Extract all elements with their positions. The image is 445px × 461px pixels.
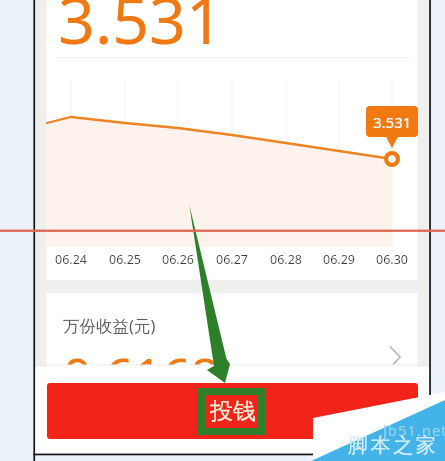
staticText: 06.26 [154,251,202,268]
staticText: 06.30 [368,251,416,268]
staticText: 3.531 [373,112,412,132]
staticText: 脚本之家 [348,433,439,458]
button[interactable]: More [383,332,409,365]
staticText: 投钱 [210,397,256,426]
staticText: 0.6168 [63,341,220,365]
button[interactable]: 投钱 [47,383,418,439]
staticText: 06.29 [315,251,363,268]
staticText: 3.531 [58,0,223,63]
staticText: jb51.net [383,420,445,440]
staticText: 06.25 [101,251,149,268]
staticText: 万份收益(元) [63,314,156,337]
staticText: 06.27 [208,251,256,268]
button[interactable]: 3.531 [366,106,418,137]
staticText: 06.28 [262,251,310,268]
staticText: 06.24 [47,251,95,268]
button[interactable]: 万份收益(元) [35,300,429,350]
